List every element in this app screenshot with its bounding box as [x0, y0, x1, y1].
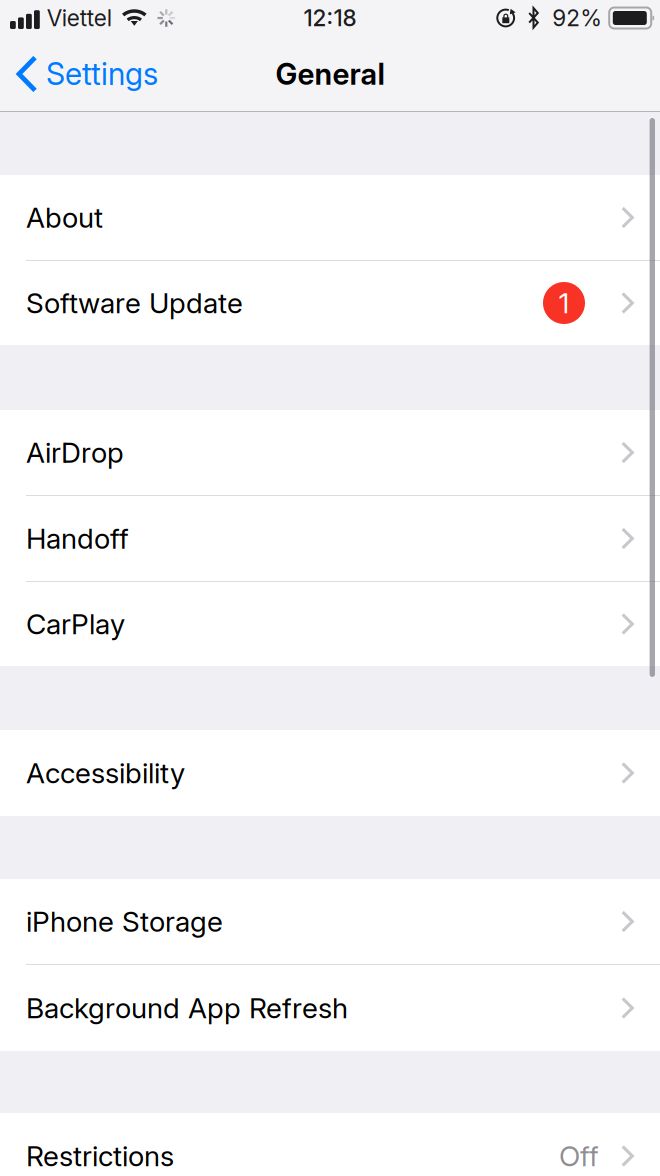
button[interactable]: CarPlay — [0, 582, 660, 666]
button[interactable]: AirDrop — [0, 410, 660, 495]
staticText: AirDrop — [26, 436, 124, 469]
staticText: Restrictions — [26, 1139, 174, 1173]
staticText: CarPlay — [26, 607, 125, 641]
staticText: Settings — [46, 56, 158, 92]
button[interactable]: Accessibility — [0, 730, 660, 816]
button[interactable]: Settings — [0, 36, 170, 112]
button[interactable]: Background App Refresh — [0, 965, 660, 1051]
staticText: 1 — [558, 286, 569, 320]
staticText: 12:18 — [303, 4, 356, 32]
button[interactable]: Handoff — [0, 496, 660, 581]
staticText: iPhone Storage — [26, 905, 223, 938]
staticText: About — [26, 201, 103, 234]
button[interactable]: iPhone Storage — [0, 879, 660, 964]
staticText: Handoff — [26, 522, 129, 555]
staticText: Accessibility — [26, 756, 185, 790]
button[interactable]: About — [0, 175, 660, 260]
button[interactable]: Software Update — [0, 261, 660, 345]
staticText: Viettel — [47, 4, 112, 32]
staticText: General — [275, 56, 384, 92]
staticText: Software Update — [26, 286, 243, 320]
staticText: Off — [559, 1139, 599, 1173]
staticText: 92% — [552, 4, 602, 32]
staticText: Background App Refresh — [26, 991, 348, 1025]
button[interactable]: Restrictions — [0, 1113, 660, 1176]
